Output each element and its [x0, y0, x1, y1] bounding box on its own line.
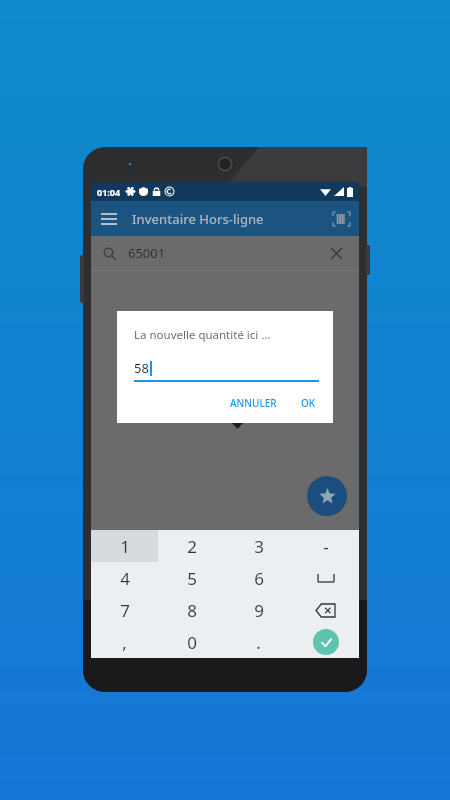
button[interactable]: ok — [292, 626, 359, 658]
staticText: 58 — [134, 359, 149, 377]
button[interactable]: Favoris — [307, 476, 347, 516]
staticText: 9 — [254, 599, 264, 622]
staticText: OK — [301, 396, 316, 410]
staticText: Inventaire Hors-ligne — [132, 210, 264, 228]
button[interactable]: space — [292, 562, 359, 594]
staticText: 7 — [120, 599, 130, 622]
button[interactable]: 3 — [225, 530, 292, 562]
staticText: La nouvelle quantité ici ... — [134, 327, 271, 343]
button[interactable]: del — [292, 594, 359, 626]
button[interactable]: Effacer — [319, 236, 353, 270]
button[interactable]: . — [225, 626, 292, 658]
staticText: 01:04 — [97, 186, 121, 198]
staticText: 6 — [254, 567, 264, 590]
staticText: 1 — [120, 535, 130, 558]
staticText: - — [323, 535, 329, 558]
staticText: 0 — [187, 631, 197, 654]
button[interactable]: 65001 — [91, 236, 359, 270]
button[interactable]: 5 — [158, 562, 225, 594]
staticText: 2 — [187, 535, 197, 558]
button[interactable]: Menu — [91, 201, 126, 236]
button[interactable]: 4 — [91, 562, 158, 594]
button[interactable]: 6 — [225, 562, 292, 594]
staticText: ANNULER — [230, 396, 277, 410]
button[interactable]: , — [91, 626, 158, 658]
button[interactable]: - — [292, 530, 359, 562]
staticText: . — [256, 631, 261, 654]
button[interactable]: Scanner code-barres — [324, 201, 359, 236]
button[interactable]: 2 — [158, 530, 225, 562]
staticText: 4 — [120, 567, 130, 590]
button[interactable]: 1 — [91, 530, 158, 562]
staticText: 65001 — [128, 244, 166, 262]
button[interactable]: 9 — [225, 594, 292, 626]
button[interactable]: ANNULER — [223, 391, 284, 415]
staticText: 3 — [254, 535, 264, 558]
button[interactable]: 7 — [91, 594, 158, 626]
button[interactable]: 0 — [158, 626, 225, 658]
staticText: , — [122, 631, 127, 654]
staticText: 8 — [187, 599, 197, 622]
button[interactable]: 8 — [158, 594, 225, 626]
staticText: 5 — [187, 567, 197, 590]
button[interactable]: OK — [294, 391, 323, 415]
